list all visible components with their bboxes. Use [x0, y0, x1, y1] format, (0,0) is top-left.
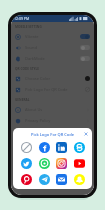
staticText: Pick Logo For QR Code	[25, 87, 68, 92]
staticText: Sound	[25, 45, 38, 50]
staticText: Privacy Policy	[25, 118, 51, 123]
button[interactable]: email	[54, 172, 68, 186]
button[interactable]	[80, 45, 90, 50]
button[interactable]: snapchat	[72, 172, 86, 186]
button[interactable]: whatsapp	[37, 156, 51, 170]
staticText: GENERAL	[15, 98, 30, 102]
button[interactable]: none	[19, 140, 33, 154]
button[interactable]: skype	[72, 140, 86, 154]
button[interactable]: About Us	[11, 104, 94, 115]
staticText: DarkMode	[25, 56, 45, 61]
button[interactable]: youtube	[72, 156, 86, 170]
button[interactable]: instagram	[54, 156, 68, 170]
staticText: MOBILE SETTING	[15, 25, 42, 29]
staticText: Vibrate	[25, 34, 39, 39]
button[interactable]: pinterest	[19, 172, 33, 186]
button[interactable]: Pick Logo For QR Code	[11, 84, 94, 95]
button[interactable]: telegram	[37, 172, 51, 186]
button[interactable]: DarkMode	[11, 53, 94, 64]
staticText: Choose Color	[25, 76, 51, 81]
staticText: About Us	[25, 107, 43, 112]
button[interactable]: Choose Color	[11, 73, 94, 84]
button[interactable]: twitter	[19, 156, 33, 170]
staticText: QR CODE STYLE	[15, 67, 40, 71]
staticText: Pick Logo For QR Code	[22, 132, 83, 137]
button[interactable]: Privacy Policy	[11, 115, 94, 126]
button[interactable]: linkedin	[54, 140, 68, 154]
button[interactable]	[80, 34, 90, 39]
button[interactable]: Sound	[11, 42, 94, 53]
button[interactable]: facebook	[37, 140, 51, 154]
button[interactable]: Close	[83, 131, 89, 137]
staticText: 12:09 PM	[14, 16, 30, 21]
button[interactable]: Vibrate	[11, 31, 94, 42]
button[interactable]	[80, 56, 90, 61]
